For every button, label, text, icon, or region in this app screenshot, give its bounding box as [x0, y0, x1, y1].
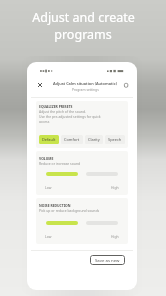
staticText: Comfort	[64, 137, 80, 142]
staticText: Default	[42, 137, 56, 142]
staticText: Adjust and create	[32, 9, 135, 26]
staticText: High	[111, 234, 119, 239]
staticText: Low	[45, 234, 52, 239]
button[interactable]: Close	[35, 80, 45, 90]
button[interactable]: Clarity	[85, 135, 103, 144]
staticText: NOISE REDUCTION	[39, 203, 71, 208]
staticText: VOLUME	[39, 156, 54, 161]
staticText: Save as new	[95, 257, 120, 263]
staticText: Program settings	[72, 87, 99, 91]
button[interactable]: Speech	[105, 135, 125, 144]
staticText: Adjust the pitch of the sound. Use the p…	[39, 109, 101, 124]
staticText: High	[111, 185, 119, 190]
staticText: Reduce or increase sound	[39, 161, 81, 166]
button[interactable]: Default	[39, 135, 59, 144]
staticText: Low	[45, 185, 52, 190]
staticText: programs	[54, 26, 112, 43]
staticText: Clarity	[88, 137, 100, 142]
button[interactable]: Save as new	[90, 255, 125, 265]
staticText: Speech	[108, 137, 122, 142]
staticText: Adjust Calm situation (Automatic)	[53, 81, 117, 86]
staticText: EQUALIZER PRESETS	[39, 104, 73, 109]
button[interactable]: Help	[121, 80, 131, 90]
button[interactable]: Comfort	[61, 135, 83, 144]
staticText: Pick up or reduce background sounds	[39, 208, 100, 213]
